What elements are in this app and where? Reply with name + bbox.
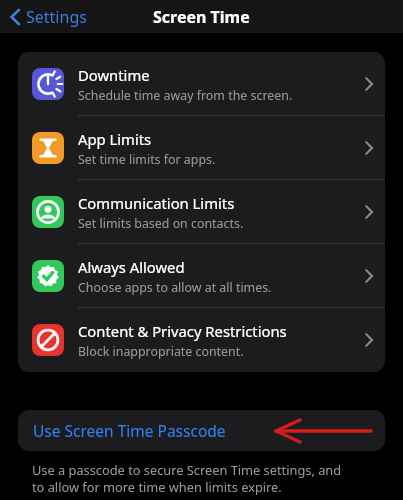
- staticText: Block inappropriate content.: [78, 343, 244, 360]
- button[interactable]: Communication Limits: [18, 180, 385, 244]
- staticText: to allow for more time when limits expir…: [32, 478, 282, 495]
- staticText: Schedule time away from the screen.: [78, 87, 293, 104]
- staticText: Screen Time: [153, 6, 250, 28]
- staticText: Use Screen Time Passcode: [33, 420, 226, 441]
- staticText: Set limits based on contacts.: [78, 215, 244, 232]
- staticText: Downtime: [78, 65, 150, 85]
- staticText: Use a passcode to secure Screen Time set…: [32, 461, 342, 478]
- staticText: Choose apps to allow at all times.: [78, 279, 272, 296]
- button[interactable]: Use Screen Time Passcode: [18, 410, 385, 451]
- button[interactable]: Always Allowed: [18, 244, 385, 308]
- staticText: Content & Privacy Restrictions: [78, 321, 287, 341]
- staticText: Set time limits for apps.: [78, 151, 216, 168]
- staticText: Settings: [26, 6, 87, 28]
- button[interactable]: Content & Privacy Restrictions: [18, 308, 385, 372]
- staticText: App Limits: [78, 129, 152, 149]
- staticText: Always Allowed: [78, 257, 185, 277]
- button[interactable]: Downtime: [18, 52, 385, 116]
- button[interactable]: Settings: [6, 2, 91, 32]
- staticText: Communication Limits: [78, 193, 235, 213]
- button[interactable]: App Limits: [18, 116, 385, 180]
